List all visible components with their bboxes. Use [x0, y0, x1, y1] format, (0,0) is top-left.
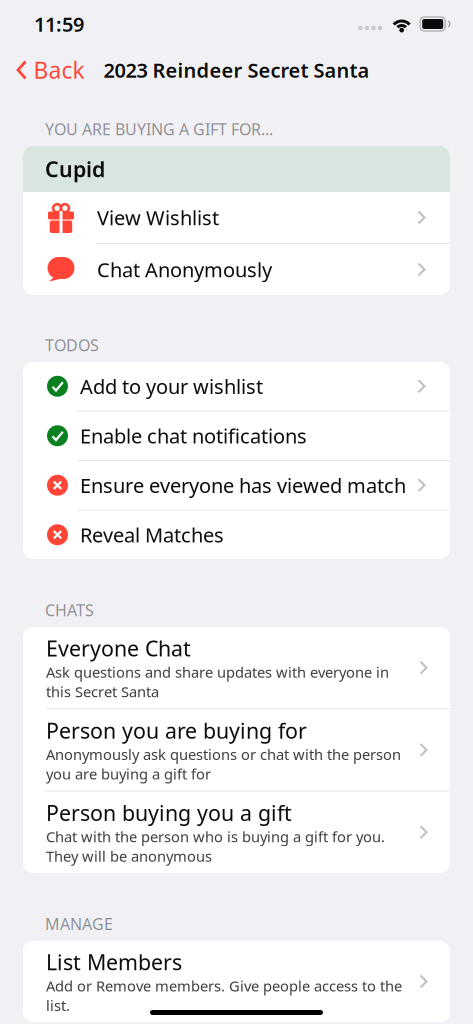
- staticText: Chat with the person who is buying a gif…: [46, 827, 385, 866]
- staticText: Ask questions and share updates with eve…: [46, 662, 389, 701]
- button[interactable]: Add to your wishlist: [23, 362, 450, 410]
- staticText: MANAGE: [45, 913, 113, 934]
- staticText: 11:59: [34, 11, 84, 37]
- staticText: Anonymously ask questions or chat with t…: [46, 745, 401, 784]
- staticText: Cupid: [45, 155, 105, 183]
- staticText: Person buying you a gift: [46, 799, 292, 827]
- button[interactable]: Back: [0, 48, 94, 92]
- button[interactable]: View Wishlist: [23, 192, 450, 243]
- button[interactable]: Person buying you a gift: [23, 792, 450, 873]
- staticText: List Members: [46, 948, 182, 976]
- button[interactable]: Reveal Matches: [23, 510, 450, 559]
- staticText: 2023 Reindeer Secret Santa: [103, 57, 369, 83]
- staticText: Enable chat notifications: [80, 422, 307, 449]
- staticText: YOU ARE BUYING A GIFT FOR...: [45, 118, 273, 140]
- staticText: Add or Remove members. Give people acces…: [46, 976, 402, 1015]
- staticText: Person you are buying for: [46, 716, 307, 745]
- button[interactable]: Everyone Chat: [23, 627, 450, 708]
- button[interactable]: List Members: [23, 941, 450, 1022]
- button[interactable]: Ensure everyone has viewed match: [23, 461, 450, 509]
- staticText: View Wishlist: [97, 204, 219, 231]
- button[interactable]: Person you are buying for: [23, 709, 450, 791]
- staticText: Ensure everyone has viewed match: [80, 472, 406, 499]
- staticText: Everyone Chat: [46, 634, 191, 662]
- staticText: TODOS: [45, 334, 99, 356]
- button[interactable]: Chat Anonymously: [23, 244, 450, 295]
- button[interactable]: Enable chat notifications: [23, 411, 450, 460]
- staticText: CHATS: [45, 599, 94, 621]
- staticText: Add to your wishlist: [80, 373, 263, 400]
- staticText: Chat Anonymously: [97, 256, 272, 283]
- staticText: Reveal Matches: [80, 521, 224, 548]
- staticText: Back: [33, 55, 84, 85]
